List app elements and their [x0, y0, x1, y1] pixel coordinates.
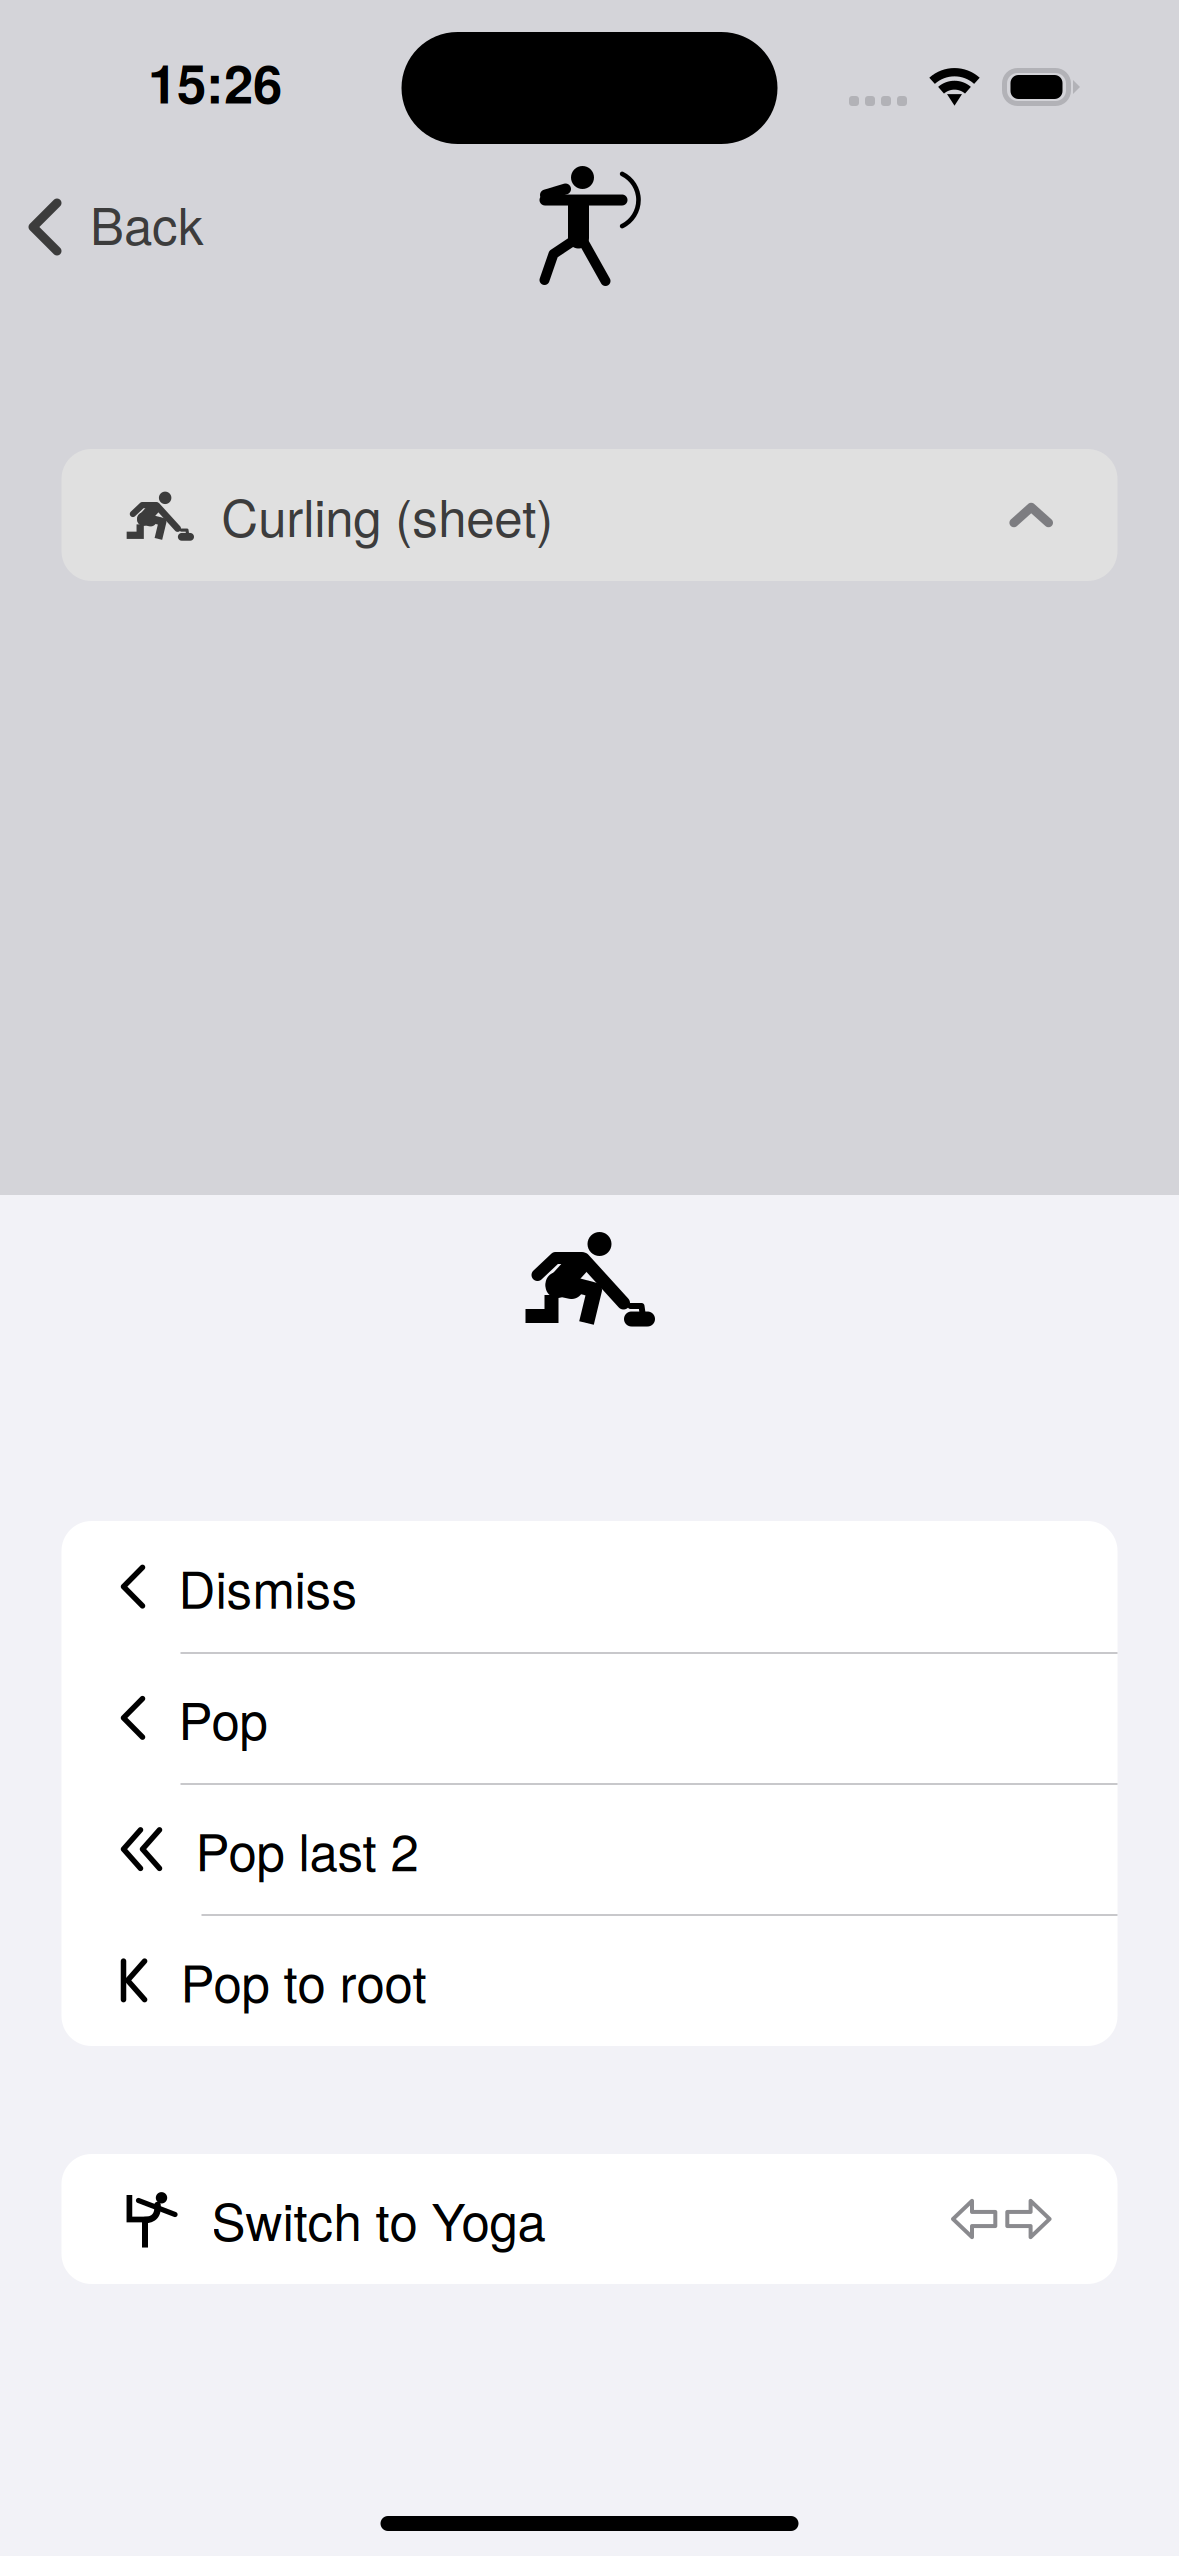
- staticText: Pop: [178, 1681, 267, 1754]
- button[interactable]: Curling (sheet): [61, 449, 1117, 581]
- button[interactable]: Back: [0, 175, 204, 271]
- staticText: Curling (sheet): [221, 478, 553, 551]
- button[interactable]: Pop to root: [61, 1915, 1117, 2046]
- staticText: Pop last 2: [195, 1813, 418, 1886]
- staticText: Back: [90, 186, 204, 259]
- staticText: 15:26: [148, 44, 282, 120]
- button[interactable]: Pop last 2: [61, 1783, 1117, 1915]
- staticText: Dismiss: [178, 1550, 357, 1623]
- button[interactable]: Pop: [61, 1652, 1117, 1783]
- staticText: Pop to root: [181, 1944, 427, 2017]
- button[interactable]: Dismiss: [61, 1521, 1117, 1652]
- button[interactable]: Switch to Yoga: [61, 2154, 1117, 2284]
- staticText: Switch to Yoga: [211, 2182, 545, 2255]
